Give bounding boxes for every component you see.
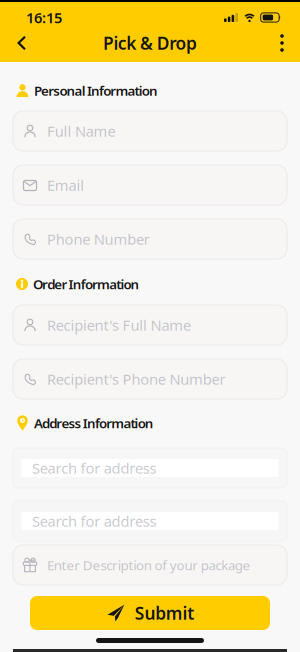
button[interactable]: Submit (30, 596, 270, 630)
staticText: Search for address (32, 458, 157, 478)
button[interactable]: Search for address (13, 501, 287, 541)
staticText: Order Information (33, 275, 140, 293)
staticText: Pick & Drop (103, 31, 197, 54)
staticText: Phone Number (47, 229, 150, 249)
button[interactable]: Full Name (13, 111, 287, 151)
staticText: Personal Information (34, 82, 158, 99)
staticText: Full Name (47, 121, 115, 141)
button[interactable]: More options (272, 31, 292, 55)
button[interactable]: Back (10, 31, 34, 55)
staticText: Search for address (32, 511, 157, 531)
staticText: Recipient's Phone Number (47, 369, 225, 389)
staticText: Recipient's Full Name (47, 315, 191, 335)
staticText: Enter Description of your package (47, 556, 251, 574)
button[interactable]: Enter Description of your package (13, 545, 287, 585)
button[interactable]: Phone Number (13, 219, 287, 259)
staticText: Email (47, 175, 84, 195)
button[interactable]: Recipient's Phone Number (13, 359, 287, 399)
button[interactable]: Recipient's Full Name (13, 305, 287, 345)
staticText: Submit (135, 601, 194, 624)
button[interactable]: Email (13, 165, 287, 205)
button[interactable]: Search for address (13, 448, 287, 488)
staticText: Address Information (34, 414, 154, 432)
staticText: 16:15 (26, 8, 62, 27)
